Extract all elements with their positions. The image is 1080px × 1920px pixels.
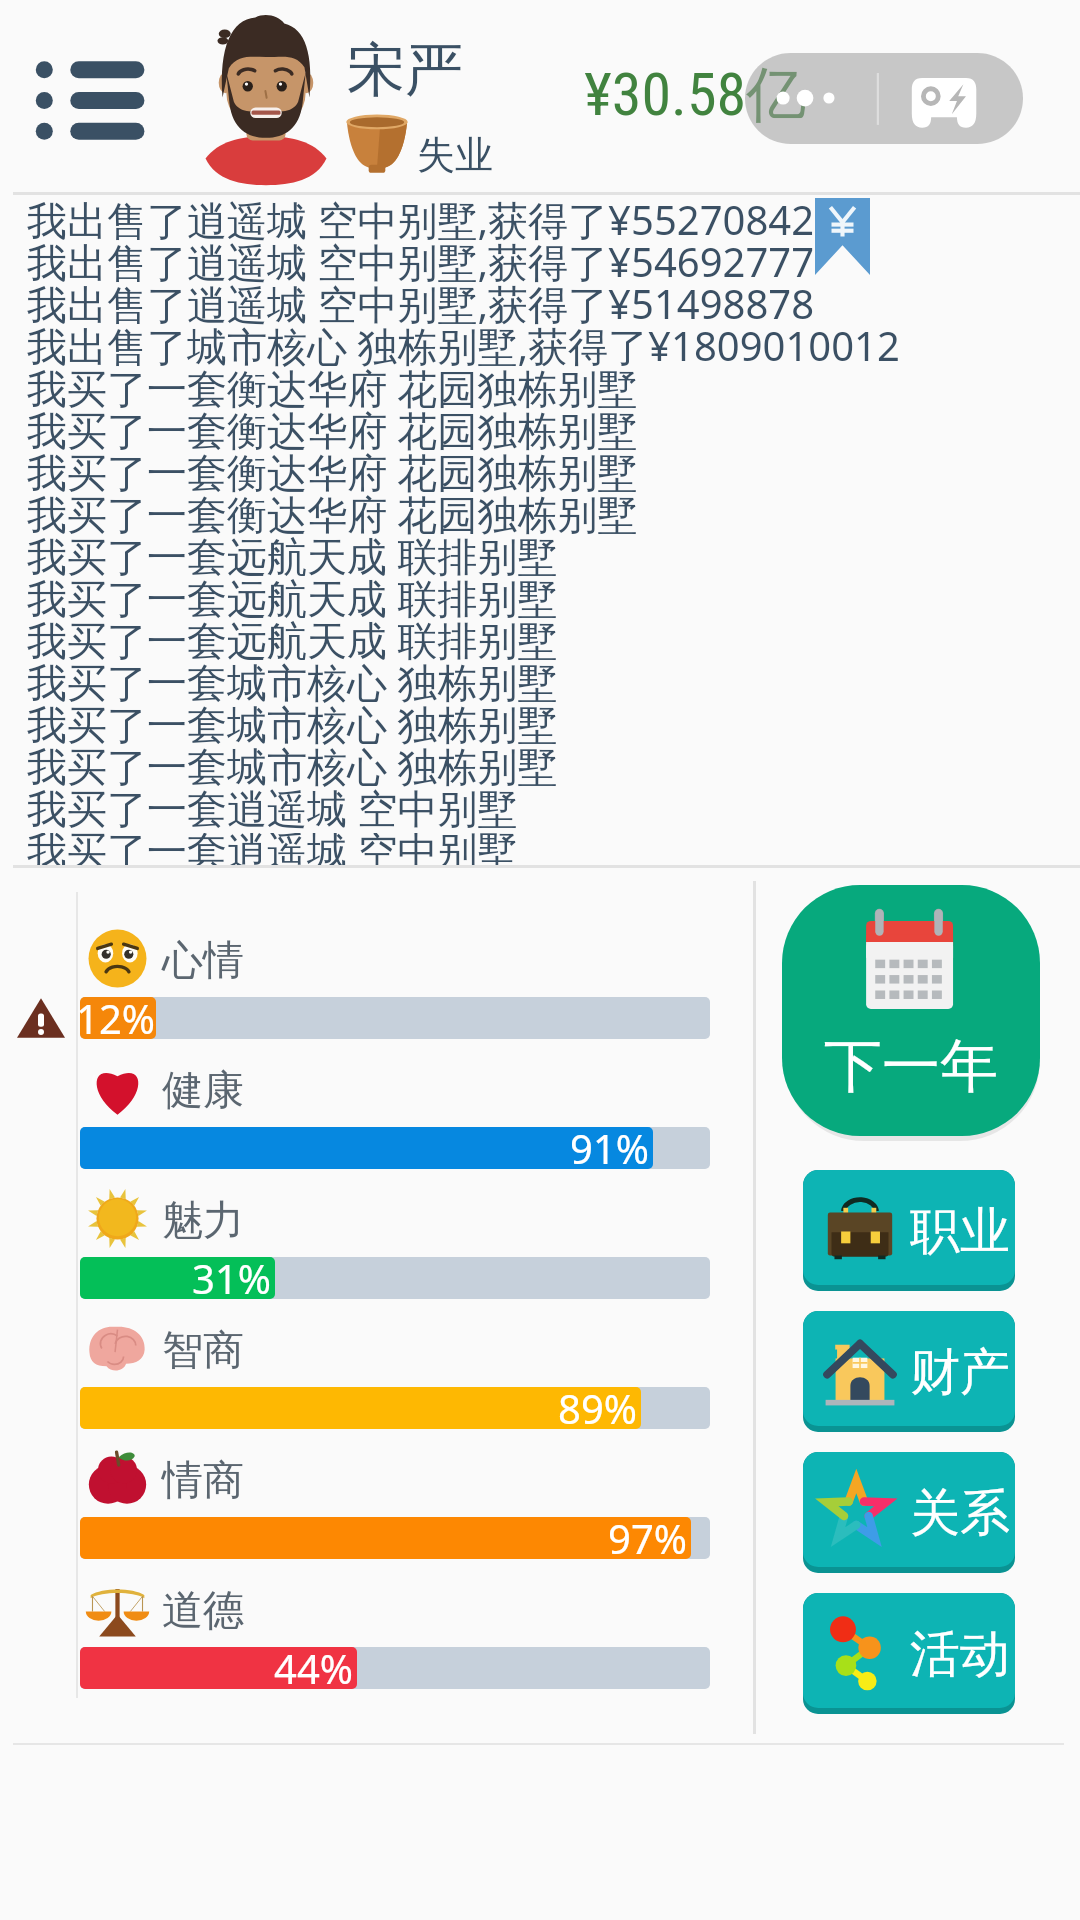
staticText: 我买了一套衡达华府 花园独栋别墅 [27,371,638,413]
staticText: 我买了一套衡达华府 花园独栋别墅 [27,413,638,455]
staticText: ¥30.58亿 [584,57,807,133]
staticText: 97% [608,1511,687,1553]
staticText: 我买了一套远航天成 联排别墅 [27,623,558,665]
staticText: 关系 [910,1482,1010,1545]
staticText: 智商 [162,1325,244,1377]
button[interactable]: Menu [30,40,160,150]
staticText: 心情 [162,935,244,987]
button[interactable]: 关系 [803,1452,1015,1573]
staticText: 健康 [162,1065,244,1117]
staticText: 我出售了逍遥城 空中别墅,获得了¥54692777 [27,245,815,287]
staticText: 宋严 [347,34,463,107]
button[interactable]: 活动 [803,1593,1015,1714]
staticText: 下一年 [824,1030,998,1103]
staticText: 财产 [910,1341,1010,1404]
button[interactable]: 下一年 [782,885,1040,1136]
staticText: 我买了一套远航天成 联排别墅 [27,581,558,623]
staticText: 活动 [910,1623,1010,1686]
staticText: 91% [570,1121,649,1163]
staticText: 我买了一套衡达华府 花园独栋别墅 [27,455,638,497]
staticText: 我买了一套逍遥城 空中别墅 [27,791,518,833]
button[interactable]: 财产 [803,1311,1015,1432]
staticText: 我出售了逍遥城 空中别墅,获得了¥55270842 [27,203,815,245]
button[interactable]: 职业 [803,1170,1015,1291]
staticText: 我出售了逍遥城 空中别墅,获得了¥51498878 [27,287,815,329]
staticText: 魅力 [162,1195,244,1247]
staticText: 44% [274,1641,353,1683]
staticText: 我买了一套远航天成 联排别墅 [27,539,558,581]
staticText: 失业 [417,131,493,179]
staticText: 我买了一套城市核心 独栋别墅 [27,707,558,749]
staticText: 12% [76,991,152,1033]
button[interactable]: Game assistant [745,53,1023,144]
staticText: 我买了一套城市核心 独栋别墅 [27,749,558,791]
staticText: 我买了一套逍遥城 空中别墅 [27,833,518,865]
staticText: 89% [558,1381,637,1423]
staticText: 我出售了城市核心 独栋别墅,获得了¥1809010012 [27,329,900,371]
staticText: 情商 [162,1455,244,1507]
staticText: 我买了一套衡达华府 花园独栋别墅 [27,497,638,539]
staticText: 我买了一套城市核心 独栋别墅 [27,665,558,707]
staticText: 31% [192,1251,271,1293]
staticText: 道德 [162,1585,244,1637]
staticText: 职业 [910,1200,1010,1263]
